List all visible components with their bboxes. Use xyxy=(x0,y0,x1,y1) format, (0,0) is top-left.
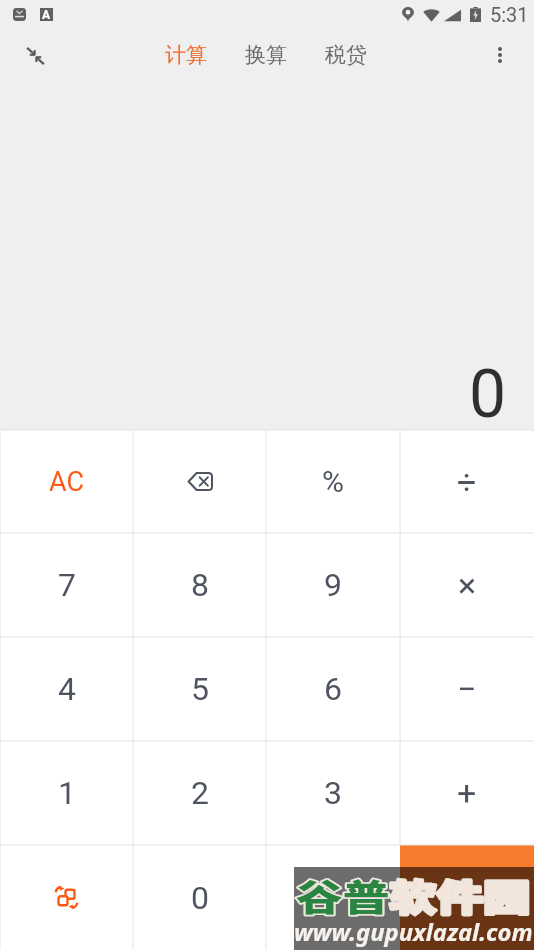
other: Backspace xyxy=(187,472,213,491)
button[interactable]: 3 xyxy=(266,741,400,845)
staticText: % xyxy=(322,464,344,499)
button[interactable]: % xyxy=(266,430,400,533)
staticText: AC xyxy=(49,466,85,498)
staticText: 8 xyxy=(191,566,209,604)
button[interactable]: Backspace xyxy=(133,430,266,533)
staticText: 3 xyxy=(324,774,342,812)
button[interactable]: 1 xyxy=(0,741,133,845)
staticText: 7 xyxy=(58,566,76,604)
button[interactable]: Collapse xyxy=(13,34,57,78)
button[interactable]: 4 xyxy=(0,637,133,741)
staticText: − xyxy=(457,669,477,709)
staticText: 谷普软件园 xyxy=(296,869,531,921)
staticText: × xyxy=(458,565,477,605)
button[interactable]: 7 xyxy=(0,533,133,637)
staticText: 5 xyxy=(191,670,209,708)
staticText: 0 xyxy=(469,356,507,433)
staticText: 2 xyxy=(191,774,209,812)
button[interactable]: 2 xyxy=(133,741,266,845)
staticText: ÷ xyxy=(457,462,477,502)
staticText: 1 xyxy=(58,774,76,812)
button[interactable]: 税贷 xyxy=(317,30,375,80)
button[interactable]: 计算 xyxy=(157,30,215,80)
button[interactable]: AC xyxy=(0,430,133,533)
staticText: 4 xyxy=(58,670,76,708)
button[interactable]: 换算 xyxy=(237,30,295,80)
staticText: 9 xyxy=(324,566,342,604)
staticText: 谷普 xyxy=(296,869,391,921)
button[interactable]: ÷ xyxy=(400,430,534,533)
staticText: www.gupuxlazal.com xyxy=(294,915,532,948)
staticText: . xyxy=(329,879,338,917)
button[interactable]: 9 xyxy=(266,533,400,637)
button[interactable]: 8 xyxy=(133,533,266,637)
button[interactable]: + xyxy=(400,741,534,845)
button[interactable]: . xyxy=(266,845,400,950)
staticText: + xyxy=(457,773,477,813)
staticText: 6 xyxy=(324,670,342,708)
button[interactable]: × xyxy=(400,533,534,637)
staticText: 税贷 xyxy=(325,42,367,68)
button[interactable]: 0 xyxy=(133,845,266,950)
button[interactable]: = xyxy=(400,845,534,950)
staticText: 换算 xyxy=(245,42,287,68)
other: Convert xyxy=(54,885,79,910)
staticText: A xyxy=(42,8,51,21)
staticText: 5:31 xyxy=(490,3,529,26)
button[interactable]: − xyxy=(400,637,534,741)
staticText: 软件园 xyxy=(391,869,533,921)
button[interactable]: 6 xyxy=(266,637,400,741)
staticText: 计算 xyxy=(165,42,207,68)
button[interactable]: 5 xyxy=(133,637,266,741)
button[interactable]: Convert xyxy=(0,845,133,950)
button[interactable]: More options xyxy=(478,33,522,77)
staticText: 0 xyxy=(191,879,209,917)
staticText: = xyxy=(458,878,477,918)
